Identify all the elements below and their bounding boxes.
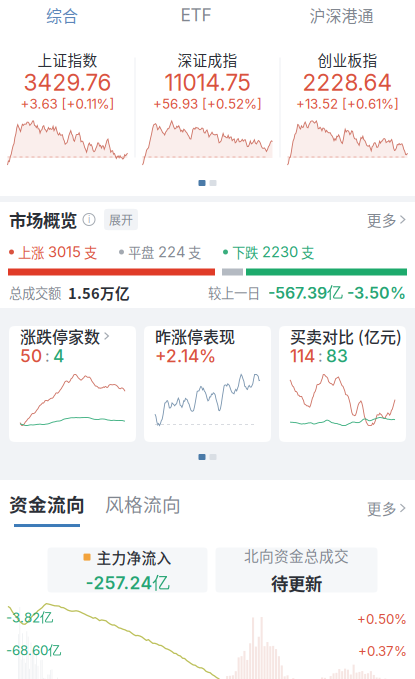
staticText: +3.63 [+0.11%] bbox=[20, 96, 114, 112]
staticText: 支 bbox=[301, 242, 314, 262]
staticText: 较上一日 bbox=[208, 283, 260, 302]
button[interactable]: ETF bbox=[124, 0, 268, 30]
staticText: 50 bbox=[20, 345, 42, 366]
staticText: +0.50% bbox=[357, 611, 407, 627]
staticText: 上证指数 bbox=[37, 49, 97, 70]
staticText: 资金流向 bbox=[9, 490, 85, 517]
staticText: i bbox=[88, 214, 90, 225]
staticText: 上涨 bbox=[18, 242, 44, 262]
staticText: -3.82亿 bbox=[6, 609, 53, 626]
button[interactable]: 昨涨停表现 bbox=[144, 326, 271, 442]
staticText: : bbox=[45, 346, 50, 366]
staticText: 创业板指 bbox=[317, 49, 377, 70]
staticText: 224 bbox=[158, 243, 185, 261]
staticText: 待更新 bbox=[271, 570, 322, 595]
staticText: 深证成指 bbox=[177, 49, 237, 70]
staticText: 支 bbox=[188, 242, 201, 262]
button[interactable]: 沪深港通 bbox=[268, 0, 415, 30]
staticText: 展开 bbox=[109, 211, 133, 228]
button[interactable]: 北向资金总成交 bbox=[215, 547, 377, 592]
staticText: 支 bbox=[84, 242, 97, 262]
button[interactable]: 更多 bbox=[367, 491, 406, 525]
staticText: 2230 bbox=[262, 243, 298, 261]
staticText: 综合 bbox=[46, 3, 78, 27]
staticText: 1.56万亿 bbox=[68, 282, 130, 303]
staticText: -257.24亿 bbox=[85, 572, 169, 593]
button[interactable]: 主力净流入 bbox=[47, 547, 207, 592]
staticText: 买卖对比 (亿元) bbox=[290, 324, 402, 348]
button[interactable]: 风格流向 bbox=[85, 485, 181, 527]
button[interactable]: 买卖对比 (亿元) bbox=[279, 326, 406, 442]
staticText: 风格流向 bbox=[105, 490, 181, 517]
staticText: 4 bbox=[53, 345, 64, 366]
staticText: 昨涨停表现 bbox=[155, 324, 235, 348]
staticText: 下跌 bbox=[232, 242, 258, 262]
staticText: 3429.76 bbox=[23, 69, 111, 96]
staticText: ETF bbox=[180, 4, 211, 25]
staticText: 更多 bbox=[367, 209, 397, 230]
button[interactable]: 综合 bbox=[0, 0, 124, 30]
staticText: 沪深港通 bbox=[309, 3, 373, 27]
button[interactable]: 创业板指 bbox=[280, 49, 414, 165]
staticText: 总成交额 bbox=[9, 283, 61, 302]
staticText: +13.52 [+0.61%] bbox=[296, 96, 399, 112]
staticText: 114 bbox=[290, 345, 315, 366]
staticText: 市场概览 bbox=[9, 207, 77, 232]
staticText: 3015 bbox=[48, 243, 81, 261]
staticText: 更多 bbox=[367, 497, 397, 519]
staticText: +0.37% bbox=[358, 643, 407, 659]
staticText: 11014.75 bbox=[164, 69, 250, 96]
button[interactable]: 上证指数 bbox=[0, 49, 134, 165]
staticText: +56.93 [+0.52%] bbox=[153, 96, 262, 112]
staticText: 83 bbox=[326, 345, 348, 366]
staticText: -68.60亿 bbox=[6, 642, 61, 659]
staticText: : bbox=[318, 346, 323, 366]
staticText: 平盘 bbox=[128, 242, 154, 262]
staticText: -567.39亿 -3.50% bbox=[268, 282, 406, 303]
button[interactable]: 涨跌停家数 bbox=[9, 326, 136, 442]
button[interactable]: 资金流向 bbox=[9, 485, 85, 527]
staticText: 主力净流入 bbox=[96, 546, 171, 568]
staticText: 2228.64 bbox=[302, 69, 392, 96]
staticText: +2.14% bbox=[155, 345, 216, 366]
staticText: 涨跌停家数 bbox=[20, 324, 100, 348]
button[interactable]: 深证成指 bbox=[135, 49, 279, 165]
button[interactable]: 更多 bbox=[367, 203, 406, 236]
staticText: 北向资金总成交 bbox=[244, 545, 349, 566]
